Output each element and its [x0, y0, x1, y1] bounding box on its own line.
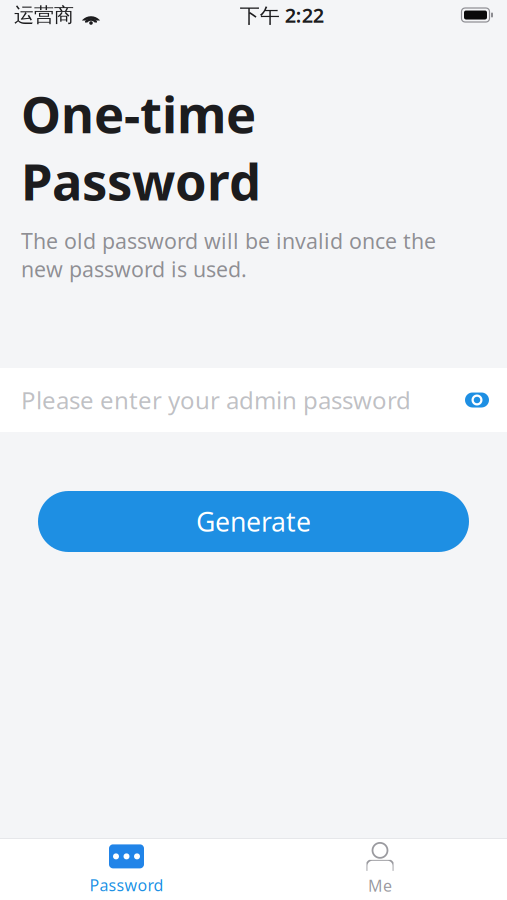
staticText: Please enter your admin password — [21, 384, 411, 416]
button[interactable]: Me — [253, 839, 507, 900]
button[interactable]: Password — [0, 839, 253, 900]
staticText: The old password will be invalid once th… — [21, 227, 436, 283]
staticText: Generate — [196, 504, 311, 539]
staticText: 运营商 — [14, 3, 74, 27]
staticText: Password — [89, 874, 163, 896]
staticText: One-time Password — [21, 80, 261, 215]
button[interactable]: Show password — [455, 378, 499, 422]
button[interactable]: Generate — [38, 491, 469, 552]
staticText: 下午 2:22 — [240, 2, 324, 28]
staticText: Me — [368, 875, 392, 896]
